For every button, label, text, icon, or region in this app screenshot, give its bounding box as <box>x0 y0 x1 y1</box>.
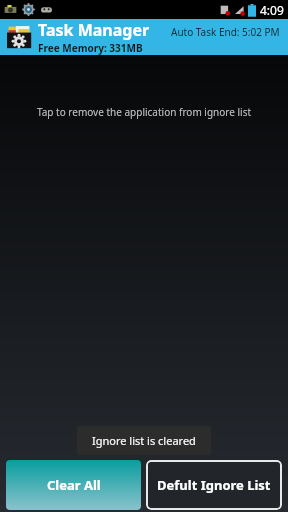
staticText: Tap to remove the application from ignor… <box>0 105 288 119</box>
staticText: Ignore list is cleared <box>92 433 196 448</box>
staticText: Auto Task End: 5:02 PM <box>171 25 280 39</box>
staticText: 4:09 <box>260 2 284 18</box>
button[interactable]: Clear All <box>6 460 141 510</box>
staticText: Clear All <box>47 476 101 494</box>
staticText: Free Memory: 331MB <box>38 41 143 55</box>
staticText: Task Manager <box>38 19 150 41</box>
button[interactable]: Defult Ignore List <box>146 460 282 510</box>
other: App icon <box>7 24 33 50</box>
staticText: Defult Ignore List <box>157 476 271 494</box>
